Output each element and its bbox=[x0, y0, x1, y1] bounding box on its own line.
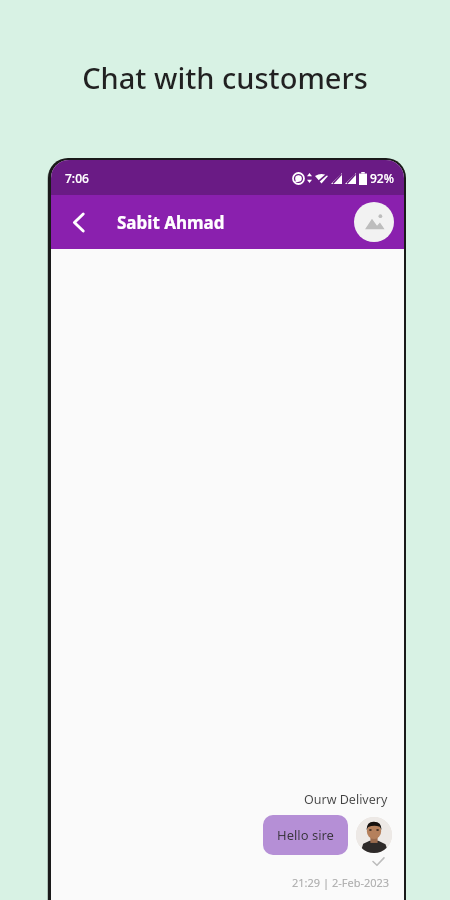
staticText: Ourw Delivery bbox=[304, 791, 388, 808]
button[interactable]: Profile picture bbox=[354, 202, 394, 242]
staticText: Sabit Ahmad bbox=[117, 211, 225, 234]
button[interactable]: Hello sire bbox=[263, 815, 348, 855]
staticText: Chat with customers bbox=[82, 58, 368, 97]
button[interactable]: Sender avatar bbox=[356, 817, 392, 853]
button[interactable]: Back bbox=[59, 202, 99, 242]
staticText: Hello sire bbox=[277, 826, 334, 844]
staticText: 7:06 bbox=[65, 170, 89, 186]
staticText: 21:29 | 2-Feb-2023 bbox=[292, 875, 390, 890]
staticText: 92% bbox=[370, 170, 394, 186]
